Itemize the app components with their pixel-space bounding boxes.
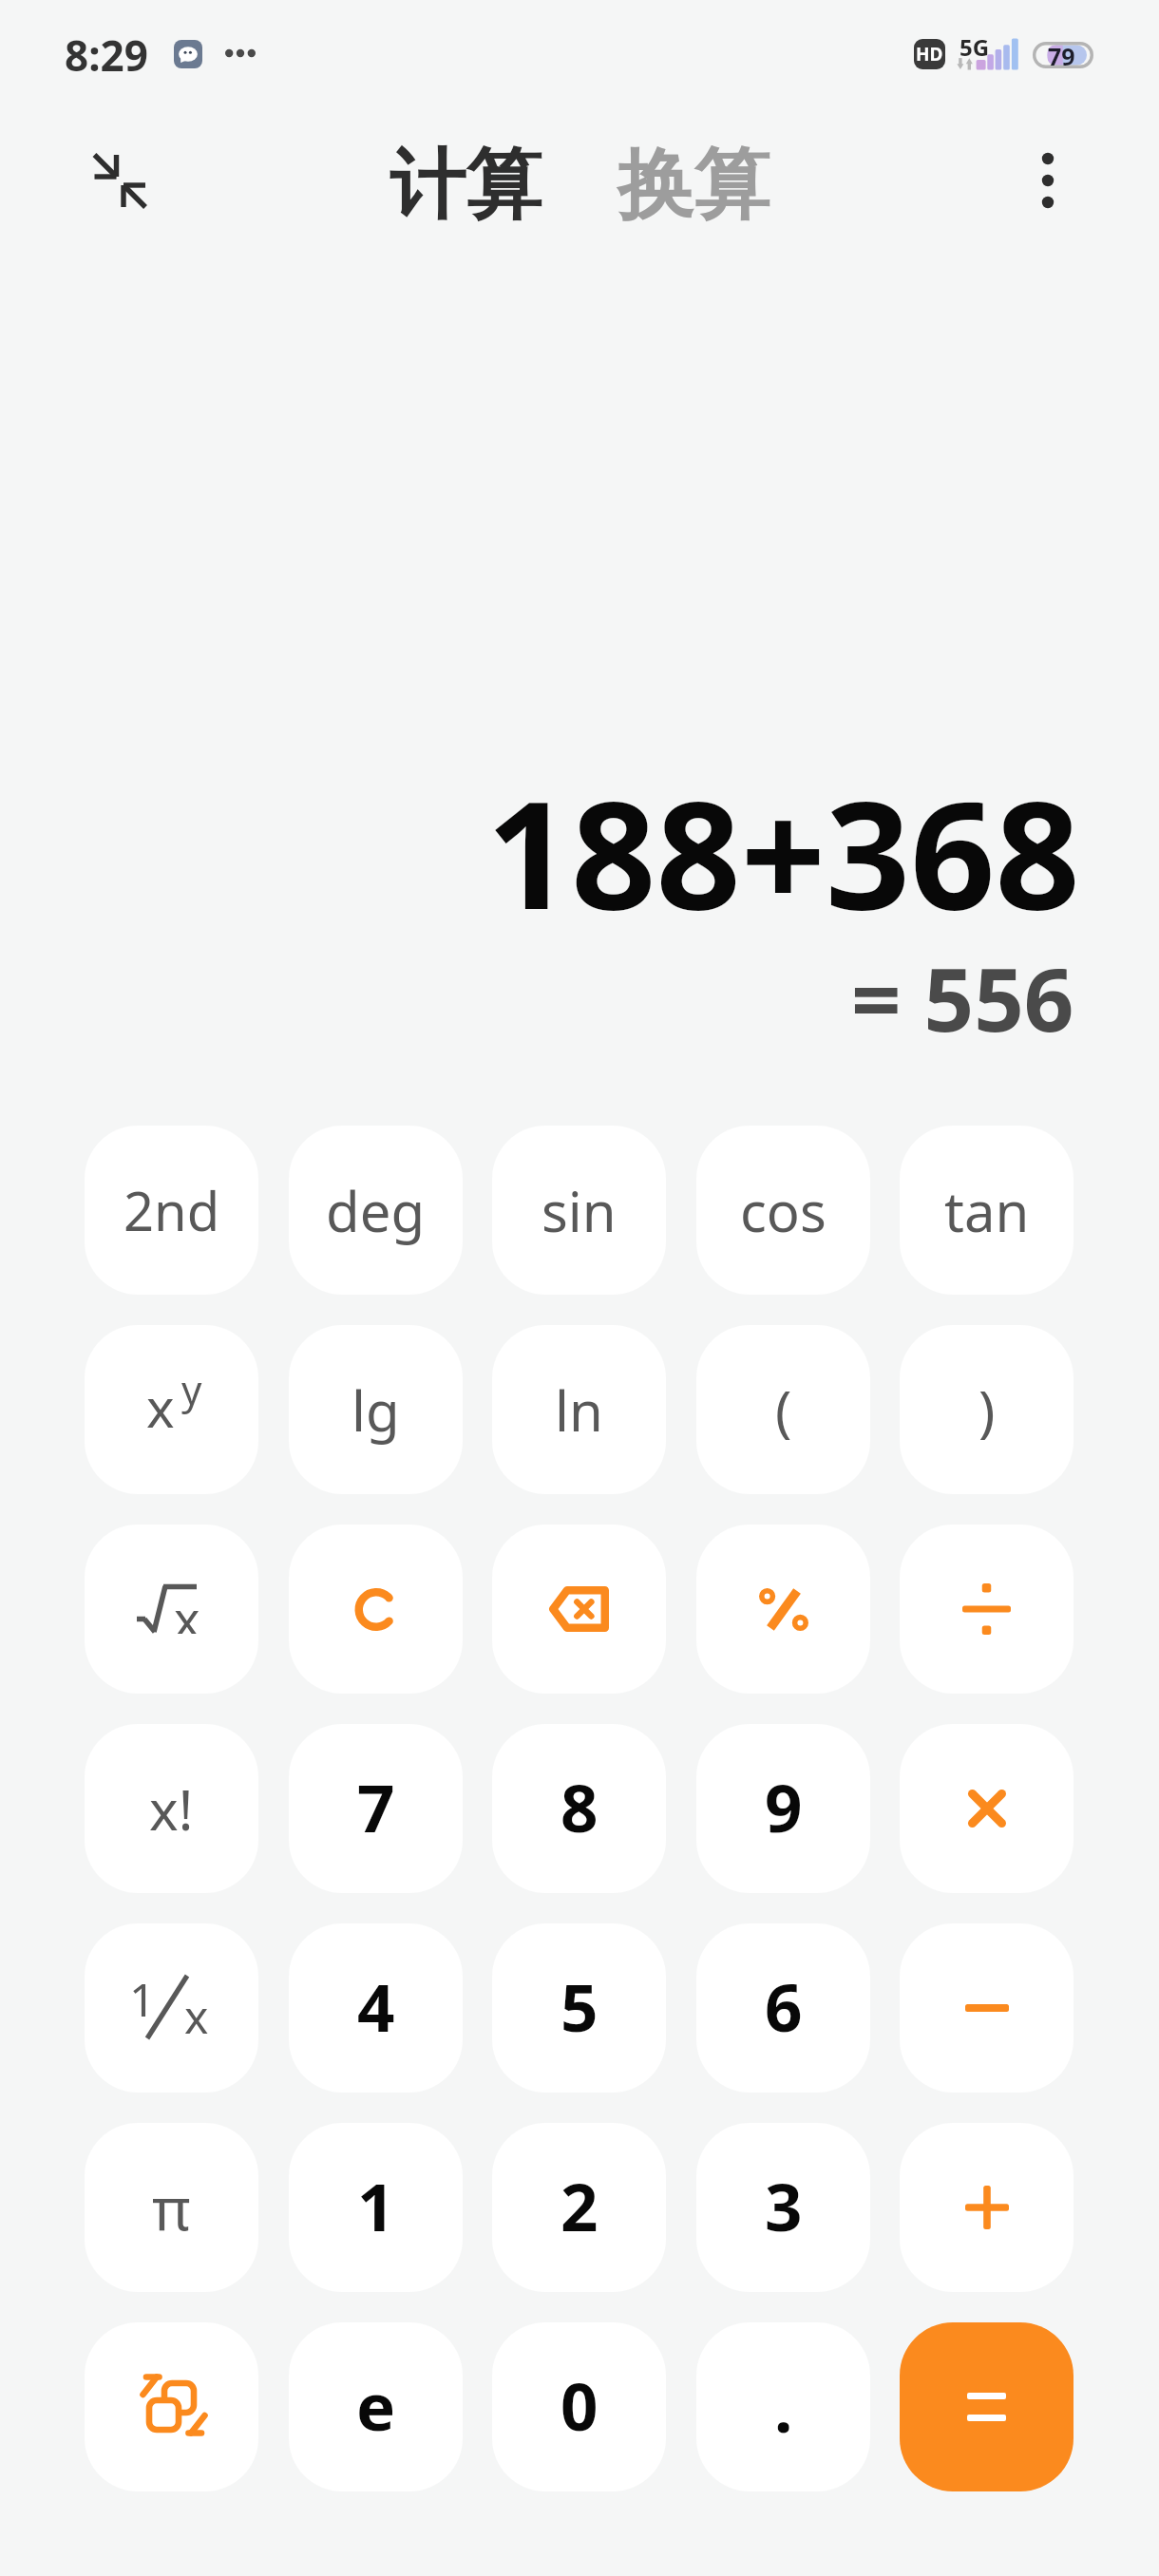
staticText: 0 [560,2360,598,2450]
button[interactable]: tan [900,1126,1073,1295]
button[interactable]: Clear [289,1525,463,1694]
button[interactable]: 0 [492,2322,666,2491]
staticText: HD [916,42,943,66]
staticText: 7 [357,1762,395,1851]
button[interactable]: x! [85,1724,258,1893]
staticText: ln [555,1373,603,1448]
button[interactable]: . [696,2322,870,2491]
staticText: 3 [765,2161,803,2250]
staticText: 8:29 [65,27,148,84]
button[interactable]: 3 [696,2123,870,2292]
staticText: 8 [560,1762,598,1851]
staticText: deg [326,1173,426,1248]
button[interactable]: π [85,2123,258,2292]
button[interactable]: Square root [85,1525,258,1694]
button[interactable]: 9 [696,1724,870,1893]
button[interactable]: 1 [289,2123,463,2292]
staticText: 9 [765,1762,803,1851]
button[interactable]: Power [85,1325,258,1494]
staticText: tan [944,1173,1030,1248]
button[interactable]: Divide [900,1525,1073,1694]
staticText: 1 [357,2161,395,2250]
button[interactable]: 2nd [85,1126,258,1295]
button[interactable]: Plus [900,2123,1073,2292]
button[interactable]: deg [289,1126,463,1295]
staticText: cos [740,1173,826,1248]
staticText: 1 [129,1968,156,2030]
staticText: ( [775,1373,792,1448]
staticText: 5G [959,31,990,63]
button[interactable]: 计算 [384,126,547,245]
staticText: 188+368 [486,750,1080,952]
staticText: . [774,2362,793,2452]
button[interactable]: lg [289,1325,463,1494]
staticText: 5 [560,1961,598,2051]
button[interactable]: cos [696,1126,870,1295]
staticText: sin [541,1173,617,1248]
button[interactable]: Multiply [900,1724,1073,1893]
button[interactable]: ( [696,1325,870,1494]
staticText: π [152,2168,191,2247]
button[interactable]: Unit conversion [85,2322,258,2491]
button[interactable]: e [289,2322,463,2491]
button[interactable]: Backspace [492,1525,666,1694]
button[interactable]: 7 [289,1724,463,1893]
staticText: 6 [765,1961,803,2051]
button[interactable]: 换算 [612,126,775,245]
button[interactable]: Collapse [72,133,167,228]
staticText: e [356,2360,396,2450]
button[interactable]: Percent [696,1525,870,1694]
staticText: lg [351,1373,400,1448]
button[interactable]: 6 [696,1923,870,2093]
button[interactable]: Reciprocal [85,1923,258,2093]
staticText: 换算 [617,138,769,234]
staticText: ) [978,1373,996,1448]
staticText: 计算 [389,138,541,234]
button[interactable]: sin [492,1126,666,1295]
button[interactable]: More options [1010,142,1086,218]
button[interactable]: 8 [492,1724,666,1893]
staticText: x [174,1584,200,1634]
staticText: 4 [357,1961,395,2051]
button[interactable]: ) [900,1325,1073,1494]
staticText: x [184,1985,209,2047]
button[interactable]: 2 [492,2123,666,2292]
staticText: y [181,1362,202,1416]
staticText: 2 [560,2161,598,2250]
button[interactable]: Equals [900,2322,1073,2491]
button[interactable]: 5 [492,1923,666,2093]
staticText: x! [149,1771,194,1847]
button[interactable]: 4 [289,1923,463,2093]
staticText: 2nd [123,1174,220,1246]
button[interactable]: ln [492,1325,666,1494]
button[interactable]: Minus [900,1923,1073,2093]
staticText: = 556 [851,938,1074,1057]
staticText: x [146,1371,175,1443]
staticText: 79 [1048,40,1075,66]
